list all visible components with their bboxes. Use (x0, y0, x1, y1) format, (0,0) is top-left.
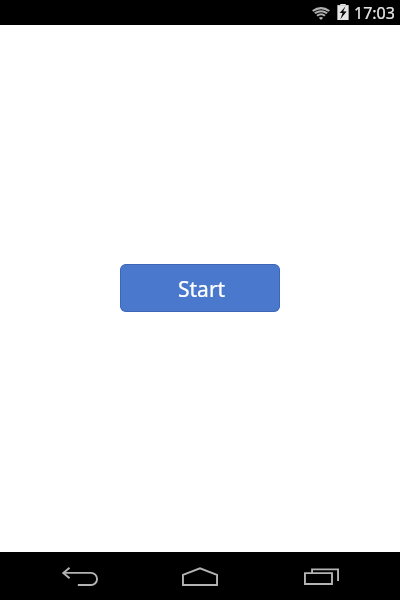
button[interactable]: Start (120, 264, 280, 312)
button[interactable]: Recent apps (291, 552, 351, 600)
staticText: 17:03 (354, 2, 395, 24)
button[interactable]: Home (170, 552, 230, 600)
staticText: Start (178, 275, 226, 304)
button[interactable]: Back (50, 552, 110, 600)
